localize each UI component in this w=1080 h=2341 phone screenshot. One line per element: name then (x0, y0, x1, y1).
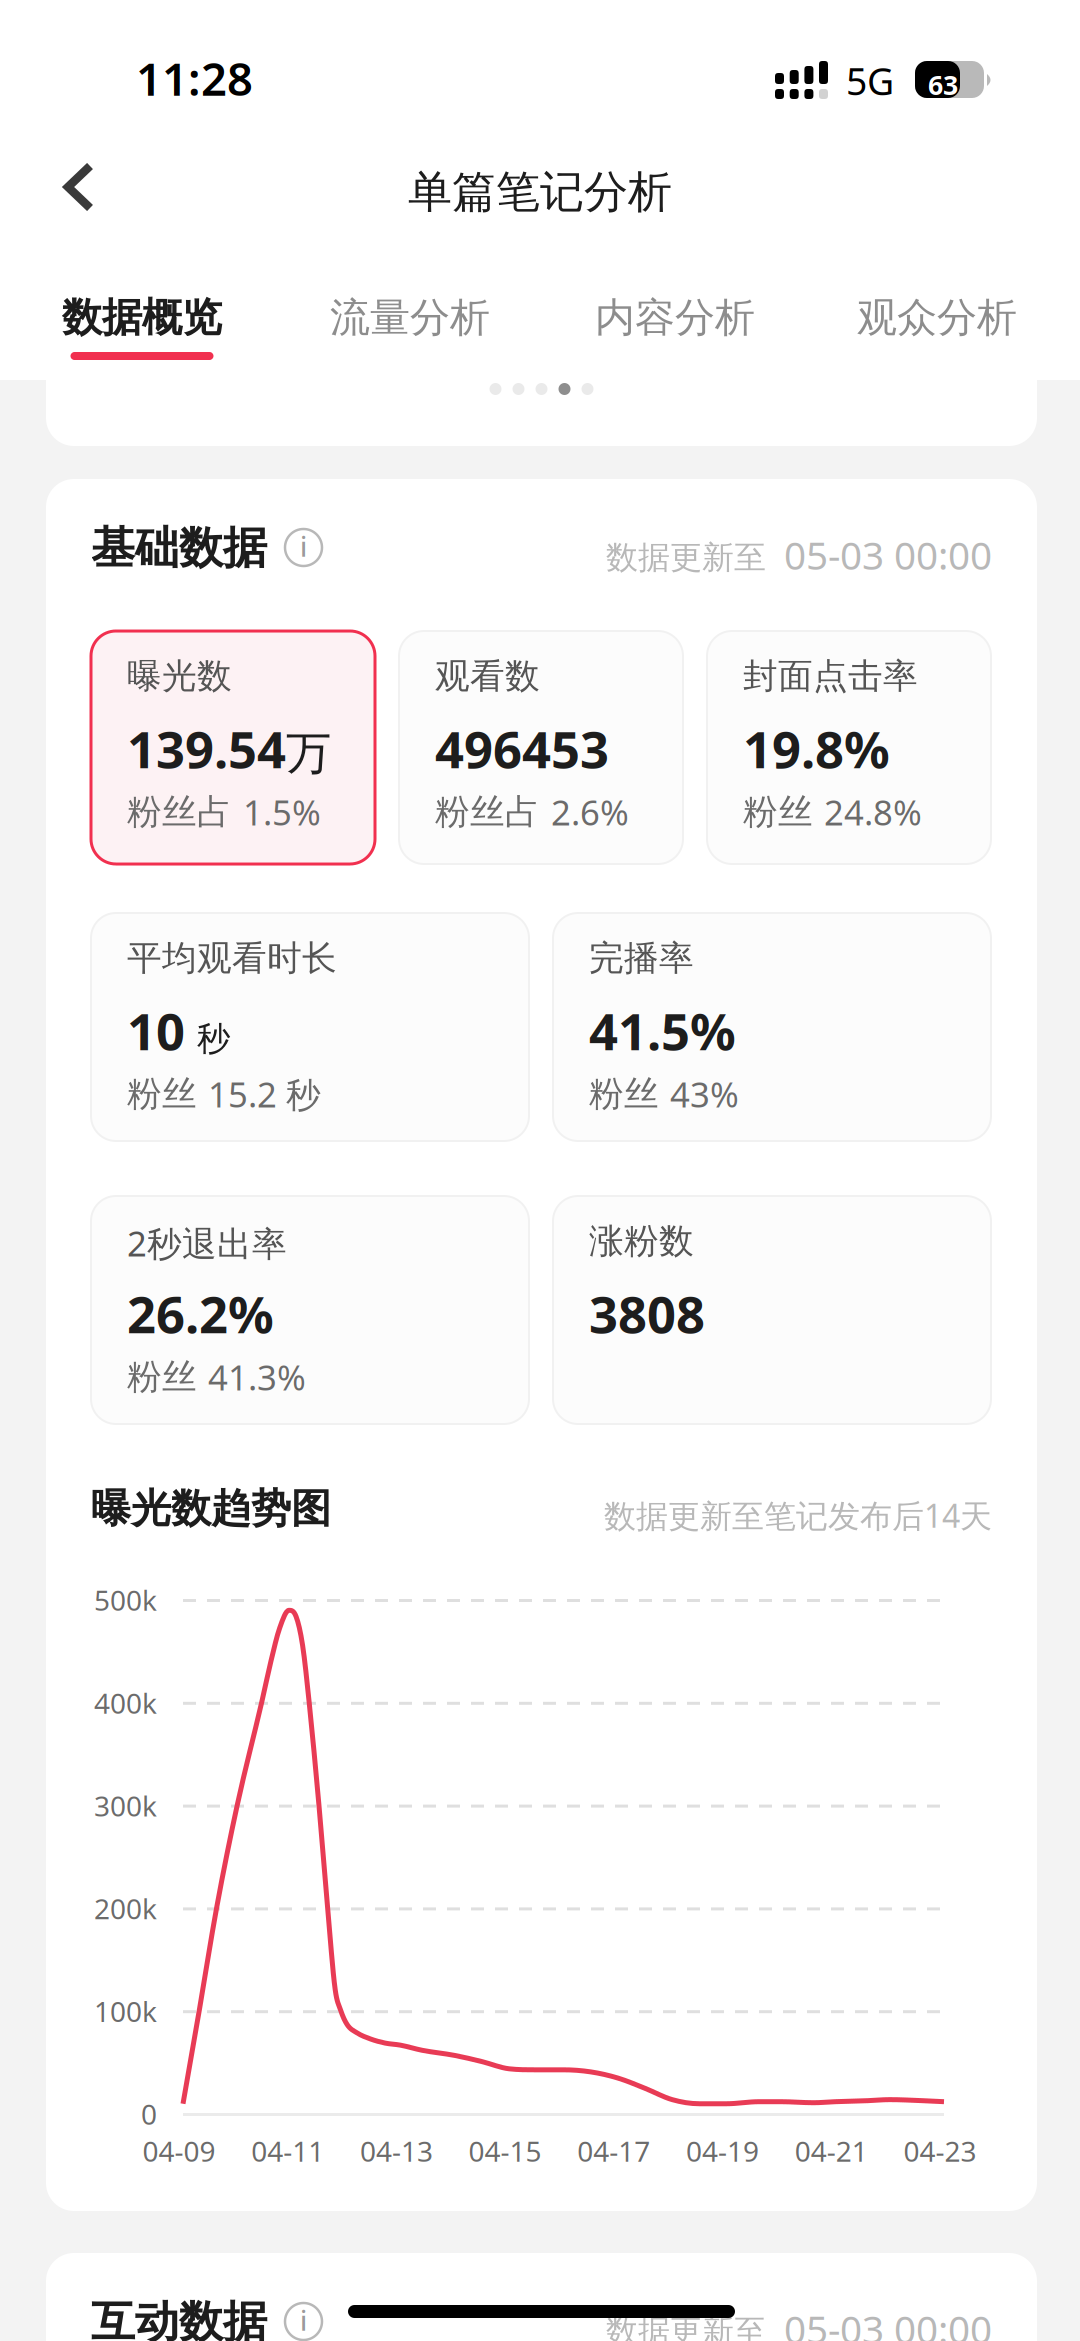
staticText: 04-19 (686, 2132, 759, 2170)
button[interactable]: 内容分析 (560, 237, 790, 363)
staticText: 5G (846, 56, 894, 106)
staticText: 粉丝占 (127, 791, 232, 833)
staticText: 15.2 秒 (208, 1071, 321, 1117)
staticText: 粉丝 (743, 791, 813, 833)
staticText: 04-21 (795, 2132, 868, 2170)
staticText: 100k (94, 1993, 157, 2030)
staticText: 粉丝 (127, 1073, 197, 1115)
staticText: 19.8% (743, 715, 890, 782)
staticText: 封面点击率 (743, 655, 918, 698)
staticText: 300k (94, 1787, 157, 1824)
staticText: 基础数据 (91, 521, 267, 575)
staticText: 04-23 (903, 2132, 976, 2170)
staticText: 曝光数 (127, 655, 232, 698)
staticText: 曝光数趋势图 (91, 1484, 331, 1533)
staticText: 2.6% (551, 789, 629, 835)
staticText: 数据更新至 (606, 538, 766, 577)
staticText: 流量分析 (330, 293, 490, 342)
staticText: 200k (94, 1890, 157, 1927)
staticText: 0 (141, 2095, 157, 2133)
staticText: 内容分析 (595, 293, 755, 342)
staticText: 400k (94, 1684, 157, 1721)
staticText: 数据更新至笔记发布后14天 (604, 1494, 992, 1536)
staticText: 3808 (589, 1280, 705, 1347)
staticText: 数据概览 (62, 293, 222, 342)
staticText: 涨粉数 (589, 1220, 694, 1263)
staticText: 10 (127, 997, 185, 1064)
staticText: 63 (928, 67, 958, 102)
button[interactable]: 数据概览 (27, 237, 257, 363)
button[interactable]: 基础数据说明 (267, 523, 328, 572)
staticText: 05-03 00:00 (784, 2303, 992, 2341)
staticText: 24.8% (824, 789, 922, 835)
staticText: 2秒退出率 (127, 1220, 287, 1266)
staticText: 04-13 (360, 2132, 433, 2170)
staticText: 11:28 (136, 48, 253, 108)
staticText: 数据更新至 (606, 2312, 766, 2341)
staticText: 04-15 (469, 2132, 542, 2170)
staticText: 500k (94, 1581, 157, 1619)
button[interactable]: 观众分析 (822, 237, 1052, 363)
staticText: 粉丝 (127, 1356, 197, 1398)
staticText: 平均观看时长 (127, 937, 337, 980)
staticText: 秒 (197, 1018, 230, 1059)
staticText: 496453 (435, 715, 609, 782)
staticText: 04-11 (251, 2132, 324, 2170)
staticText: 139.54 (127, 715, 286, 782)
staticText: 互动数据 (91, 2295, 267, 2341)
staticText: 04-09 (142, 2132, 215, 2170)
staticText: i (300, 2303, 307, 2338)
staticText: 41.3% (208, 1354, 306, 1400)
staticText: 26.2% (127, 1280, 274, 1347)
staticText: 观看数 (435, 655, 540, 698)
button[interactable]: 互动数据说明 (267, 2297, 328, 2341)
staticText: 41.5% (589, 997, 736, 1064)
staticText: 观众分析 (857, 293, 1017, 342)
staticText: 单篇笔记分析 (408, 165, 672, 219)
staticText: 43% (670, 1071, 739, 1117)
staticText: 1.5% (243, 789, 321, 835)
staticText: i (300, 529, 307, 564)
staticText: 04-17 (577, 2132, 650, 2170)
staticText: 粉丝占 (435, 791, 540, 833)
button[interactable]: 流量分析 (295, 237, 525, 363)
staticText: 粉丝 (589, 1073, 659, 1115)
staticText: 万 (286, 726, 331, 781)
staticText: 完播率 (589, 937, 694, 980)
button[interactable]: 返回 (0, 137, 137, 235)
staticText: 05-03 00:00 (784, 529, 992, 580)
